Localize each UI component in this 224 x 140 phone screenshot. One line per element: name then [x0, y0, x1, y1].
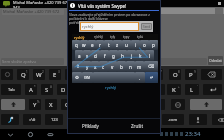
button[interactable]: e [88, 40, 96, 50]
button[interactable] [93, 72, 135, 83]
button[interactable]: A [25, 84, 37, 95]
button[interactable]: Back [6, 130, 15, 139]
button[interactable]: g [109, 50, 118, 61]
button[interactable]: E [49, 69, 61, 80]
button[interactable]: L [185, 84, 199, 95]
button[interactable]: a [75, 50, 83, 61]
button[interactable]: K [167, 84, 181, 95]
button[interactable] [201, 69, 222, 80]
button[interactable]: m [135, 61, 144, 72]
staticText: L [190, 86, 194, 94]
staticText: tyčů [137, 35, 144, 39]
button[interactable] [212, 114, 224, 125]
button[interactable]: j [127, 50, 136, 61]
button[interactable] [1, 99, 25, 110]
button[interactable] [189, 114, 207, 125]
button[interactable] [155, 99, 165, 110]
button[interactable]: l [145, 50, 154, 61]
staticText: # [50, 85, 52, 89]
staticText: I [156, 71, 159, 79]
button[interactable]: ⌫ [144, 61, 158, 72]
button[interactable]: w [80, 40, 88, 50]
staticText: % [37, 100, 40, 104]
button[interactable]: Recents [46, 130, 55, 139]
button[interactable]: J [153, 84, 165, 95]
staticText: * [34, 85, 36, 89]
staticText: K [172, 86, 176, 94]
button[interactable]: Zrušit [114, 119, 161, 133]
button[interactable]: 123 [45, 114, 63, 125]
staticText: d [94, 53, 97, 59]
staticText: b [120, 64, 123, 70]
button[interactable]: W [33, 69, 45, 80]
button[interactable]: D [57, 84, 69, 95]
button[interactable]: Y [29, 99, 41, 110]
button[interactable]: c [99, 61, 108, 72]
button[interactable]: Tab [1, 84, 21, 95]
button[interactable]: P [185, 69, 197, 80]
button[interactable]: =\# [23, 114, 41, 125]
button[interactable]: Příklady [67, 119, 114, 133]
button[interactable]: . [135, 72, 145, 83]
staticText: Michal Maňaske +420 739 672 943 [2, 9, 64, 15]
staticText: ⇧ [76, 64, 80, 69]
button[interactable]: .com [162, 114, 184, 125]
button[interactable] [203, 84, 222, 95]
button[interactable]: O [169, 69, 181, 80]
button[interactable]: v [108, 61, 117, 72]
button[interactable]: S [41, 84, 53, 95]
staticText: e [91, 42, 94, 48]
button[interactable]: t [104, 40, 113, 50]
staticText: t [108, 42, 110, 48]
button[interactable]: Q [17, 69, 29, 80]
button[interactable]: o [140, 40, 149, 50]
button[interactable]: ⇧ [72, 61, 83, 72]
button[interactable]: h [118, 50, 127, 61]
staticText: P [189, 71, 193, 79]
button[interactable]: r [96, 40, 104, 50]
button[interactable]: b [117, 61, 126, 72]
button[interactable]: Home [26, 130, 35, 139]
staticText: o [143, 42, 146, 48]
staticText: ⚙ [75, 75, 80, 80]
staticText: 1 [26, 70, 28, 74]
staticText: typy [123, 35, 130, 39]
staticText: Zrušit [131, 123, 144, 129]
staticText: 23:34 [185, 130, 201, 138]
staticText: Q [21, 71, 26, 79]
button[interactable] [190, 99, 222, 110]
button[interactable]: i [131, 40, 140, 50]
staticText: Sem vložte zprávu [1, 59, 36, 64]
button[interactable]: u [122, 40, 131, 50]
button[interactable]: Odeslat [208, 56, 223, 65]
button[interactable]: y [83, 61, 91, 72]
staticText: C [65, 101, 69, 109]
button[interactable]: Send [141, 23, 152, 30]
button[interactable]: s [83, 50, 91, 61]
button[interactable]: n [126, 61, 135, 72]
button[interactable]: SYM [82, 72, 93, 83]
button[interactable]: I [151, 69, 163, 80]
button[interactable]: ↵ [145, 72, 158, 83]
staticText: 2 [42, 70, 44, 74]
button[interactable]: f [100, 50, 109, 61]
button[interactable]: z [113, 40, 122, 50]
button[interactable]: d [91, 50, 100, 61]
staticText: .com [168, 117, 178, 122]
staticText: Vítá vás systém Swype! [78, 3, 127, 9]
button[interactable] [1, 114, 19, 125]
button[interactable]: C [61, 99, 73, 110]
button[interactable]: R [65, 69, 77, 80]
button[interactable] [1, 69, 13, 80]
button[interactable]: p [149, 40, 158, 50]
button[interactable]: ⚙ [72, 72, 82, 83]
button[interactable]: X [45, 99, 57, 110]
staticText: Odeslat [209, 58, 222, 63]
staticText: Tab [8, 87, 15, 92]
button[interactable] [171, 99, 185, 110]
staticText: X [49, 101, 53, 109]
button[interactable]: k [136, 50, 145, 61]
button[interactable]: x [91, 61, 99, 72]
button[interactable]: q [72, 40, 80, 50]
